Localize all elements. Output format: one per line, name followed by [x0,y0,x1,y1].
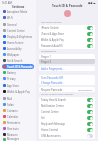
button[interactable]: Turn Passcode Off [39,75,95,80]
button[interactable]: Wallet & Apple Pay [39,37,95,43]
staticText: Touch ID & Passcode [52,4,83,7]
button[interactable]: Add a Fingerprint... [39,66,95,71]
button[interactable]: Contacts [2,108,34,113]
button[interactable]: App Store [2,83,34,88]
staticText: Battery [7,71,16,75]
staticText: Aeroplane Mode [7,10,28,14]
button[interactable]: Control Centre [2,28,34,33]
button[interactable]: Toggle [87,44,93,48]
button[interactable]: Control Centre [39,109,95,115]
staticText: Display & Brightness [7,35,33,39]
staticText: Mail [7,97,13,101]
staticText: Reminders [7,121,21,125]
staticText: Reply with Message [41,122,87,126]
staticText: ●● ▬ [88,1,96,5]
button[interactable]: Display & Brightness [2,34,34,39]
button[interactable]: Change Passcode [39,80,95,85]
button[interactable]: Toggle [87,122,93,126]
button[interactable]: Touch ID & Passcode [2,64,34,69]
button[interactable]: Privacy [2,76,34,81]
staticText: Accessibility [7,47,22,51]
staticText: USE TOUCH ID FOR: [41,21,62,24]
button[interactable]: Safari [2,102,34,107]
button[interactable]: Toggle [87,128,93,132]
button[interactable]: iPhone Unlock [39,25,95,31]
staticText: iPhone Unlock [41,26,87,30]
staticText: Finger 2 [41,60,93,64]
button[interactable]: Accessibility [2,46,34,51]
staticText: Contacts [7,109,18,113]
button[interactable]: Aeroplane Mode [2,9,34,14]
staticText: Control Centre [7,29,25,33]
button[interactable]: Reply with Message [39,121,95,127]
staticText: Immediately [78,88,93,91]
button[interactable]: Wi-Fi [2,15,34,20]
button[interactable]: Messages [2,137,34,141]
staticText: Turn Passcode Off [41,76,93,80]
button[interactable]: Finger 1 [39,54,95,59]
staticText: 9:41 AM [2,1,12,5]
button[interactable]: Toggle [87,26,93,30]
button[interactable]: Home Control [39,127,95,133]
button[interactable]: Toggle [87,32,93,36]
button[interactable]: Toggle [87,98,93,102]
staticText: Safari [7,103,14,107]
staticText: Home Control [41,128,87,132]
staticText: Wi-Fi [7,16,13,20]
staticText: Wallpaper [7,53,20,57]
staticText: Siri & Search [7,59,23,63]
staticText: Notification Centre [41,104,87,108]
button[interactable]: Toggle [87,104,93,108]
button[interactable]: Battery [2,70,34,75]
button[interactable]: General [2,22,34,27]
button[interactable]: Require Passcode [39,87,95,92]
button[interactable]: Finger 2 [39,59,95,64]
button[interactable]: Toggle [87,134,93,138]
button[interactable]: Notification Centre [39,103,95,109]
staticText: Touch ID & Passcode [7,65,33,69]
staticText: Calendar [7,115,18,119]
staticText: Password AutoFill [41,44,87,48]
staticText: App Store [7,84,19,88]
button[interactable]: Toggle [87,110,93,114]
button[interactable]: Password AutoFill [39,43,95,49]
staticText: Siri [41,116,87,120]
button[interactable]: iTunes & App Store [39,31,95,37]
button[interactable]: Today View & Search [39,97,95,103]
button[interactable]: Siri & Search [2,58,34,63]
staticText: Add a Fingerprint... [41,67,93,71]
button[interactable]: Measure [2,132,34,137]
staticText: Messages [7,137,20,141]
staticText: Control Centre [41,110,87,114]
staticText: FINGERPRINTS [41,50,57,53]
staticText: General [7,23,17,27]
button[interactable]: Wallet & Apple Pay [2,89,34,94]
button[interactable]: Toggle [87,116,93,120]
staticText: Wallet & Apple Pay [41,38,87,42]
staticText: Today View & Search [41,98,87,102]
button[interactable]: Wallpaper [2,52,34,57]
button[interactable]: Mail [2,96,34,101]
button[interactable]: Toggle [87,38,93,42]
staticText: Wallet & Apple Pay [7,90,30,94]
staticText: Change Passcode [41,81,93,85]
button[interactable]: Home Screen [2,40,34,45]
staticText: USB Accessories [41,134,87,138]
staticText: Settings [12,5,25,8]
staticText: Shortcuts [7,127,19,131]
staticText: iTunes & App Store [41,32,87,36]
staticText: Finger 1 [41,55,93,59]
button[interactable]: Shortcuts [2,126,34,131]
button[interactable]: USB Accessories [39,133,95,139]
button[interactable]: Calendar [2,114,34,119]
staticText: Home Screen [7,41,24,45]
button[interactable]: Reminders [2,120,34,125]
button[interactable]: Siri [39,115,95,121]
staticText: Require Passcode [41,88,78,92]
staticText: ALLOW ACCESS WHEN LOCKED: [41,93,74,96]
staticText: Privacy [7,77,16,81]
staticText: Measure [7,133,18,137]
